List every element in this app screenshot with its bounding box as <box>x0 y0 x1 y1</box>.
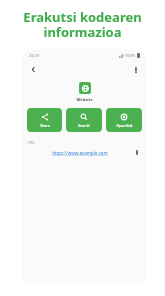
staticText: URL <box>28 140 35 145</box>
staticText: 23:37 <box>29 53 40 58</box>
staticText: Erakutsi kodearen informazioa <box>0 8 165 41</box>
button[interactable]: Open link <box>106 108 142 132</box>
staticText: Open link <box>116 123 133 128</box>
button[interactable]: Website icon <box>79 82 91 94</box>
staticText: Share <box>40 123 50 128</box>
button[interactable]: More options <box>130 64 141 75</box>
staticText: https://www.example.com <box>52 150 108 156</box>
button[interactable]: https://www.example.com <box>28 150 132 156</box>
staticText: Search <box>78 123 90 128</box>
staticText: 100% <box>125 53 136 58</box>
button[interactable]: URL options <box>132 148 141 157</box>
button[interactable]: Search <box>66 108 102 132</box>
button[interactable]: Share <box>27 108 62 132</box>
staticText: Website <box>22 97 147 102</box>
button[interactable]: Back <box>28 64 39 75</box>
